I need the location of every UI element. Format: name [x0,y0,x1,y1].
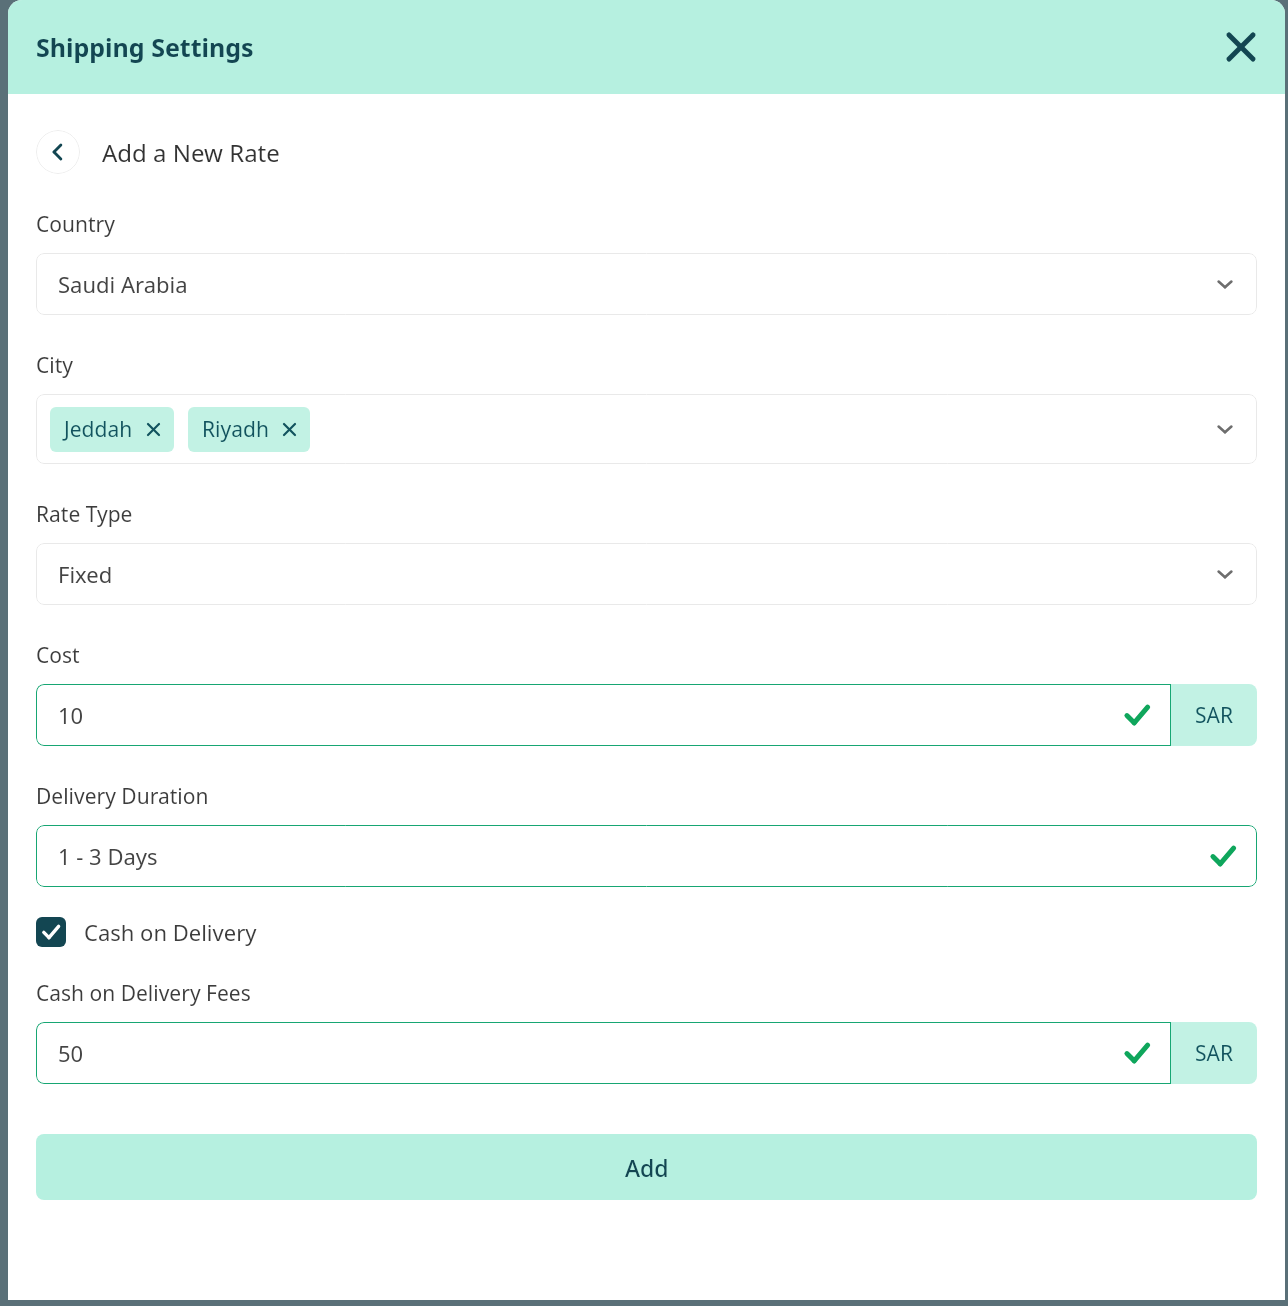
other: Back [36,130,80,174]
staticText: Jeddah [64,415,133,444]
staticText: 50 [58,1038,84,1068]
button[interactable]: 1 - 3 Days [36,825,1257,887]
button[interactable]: Back [36,130,280,174]
staticText: Cost [36,641,80,670]
staticText: Saudi Arabia [58,269,188,299]
staticText: Cash on Delivery [84,917,257,947]
button[interactable]: 50 [36,1022,1171,1084]
staticText: Country [36,210,115,239]
button[interactable]: Jeddah [50,407,174,452]
staticText: Rate Type [36,500,133,529]
staticText: Shipping Settings [36,30,254,64]
button[interactable]: 10 [36,684,1171,746]
staticText: Riyadh [202,415,269,444]
button[interactable]: Cash on Delivery [36,917,257,947]
staticText: Add a New Rate [102,136,280,169]
staticText: SAR [1195,1039,1234,1068]
staticText: City [36,351,73,380]
staticText: 1 - 3 Days [58,841,158,871]
button[interactable]: Saudi Arabia [36,253,1257,315]
staticText: Fixed [58,559,113,589]
button[interactable]: Add [36,1134,1257,1200]
button[interactable]: Riyadh [188,407,310,452]
staticText: 10 [58,700,84,730]
staticText: SAR [1195,701,1234,730]
staticText: Add [625,1152,669,1183]
button[interactable]: Fixed [36,543,1257,605]
button[interactable]: Close [1219,25,1263,69]
button[interactable]: Jeddah [36,394,1257,464]
staticText: Cash on Delivery Fees [36,979,251,1008]
staticText: Delivery Duration [36,782,209,811]
